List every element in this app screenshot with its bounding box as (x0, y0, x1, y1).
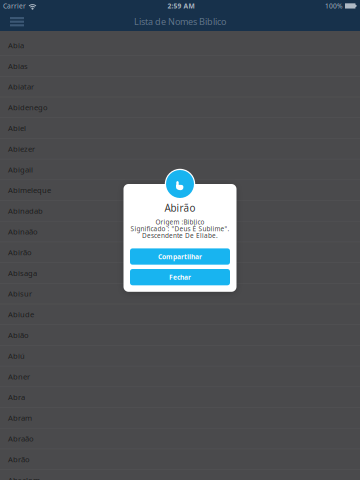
button[interactable]: Abimeleque (0, 180, 360, 201)
staticText: Abram (8, 413, 32, 423)
staticText: Abigail (8, 164, 33, 175)
staticText: Abião (8, 330, 29, 340)
staticText: Abinadab (8, 206, 43, 216)
staticText: Abirão (164, 201, 195, 215)
button[interactable]: Abigail (0, 159, 360, 180)
button[interactable]: Abirão (0, 242, 360, 263)
button[interactable]: Menu (0, 12, 32, 31)
staticText: Abner (8, 371, 30, 382)
button[interactable]: Abinaão (0, 221, 360, 242)
staticText: Abra (8, 392, 25, 402)
staticText: Carrier (3, 2, 26, 10)
staticText: Abiel (8, 123, 26, 133)
staticText: Abimeleque (8, 185, 51, 195)
staticText: Abinaão (8, 226, 38, 237)
staticText: Abiezer (8, 144, 35, 154)
staticText: Abiú (8, 351, 25, 361)
staticText: Significado : "Deus É Sublime". (130, 224, 229, 233)
staticText: Abias (8, 61, 28, 71)
staticText: Abiude (8, 309, 34, 320)
button[interactable]: Abisur (0, 284, 360, 304)
button[interactable]: Compartilhar (130, 248, 230, 265)
staticText: Origem :Biblico (155, 217, 204, 226)
button[interactable]: Fechar (130, 269, 230, 285)
staticText: Abraão (8, 433, 34, 444)
staticText: Lista de Nomes Biblico (134, 15, 226, 28)
staticText: Fechar (169, 273, 191, 282)
staticText: Descendente De Eliabe. (142, 231, 218, 240)
button[interactable]: Abinadab (0, 201, 360, 221)
staticText: Abidenego (8, 102, 48, 113)
staticText: Abisur (8, 288, 32, 299)
staticText: Abisaga (8, 268, 37, 278)
staticText: Abirão (8, 247, 32, 257)
staticText: 100% (325, 2, 343, 10)
button[interactable]: Abidenego (0, 97, 360, 118)
button[interactable]: Abisaga (0, 263, 360, 284)
staticText: Absalom (8, 475, 40, 480)
staticText: 2:59 AM (167, 2, 194, 10)
staticText: Compartilhar (158, 252, 202, 261)
staticText: Abiatar (8, 81, 34, 92)
staticText: Abrão (8, 454, 30, 464)
staticText: Abia (8, 40, 24, 50)
